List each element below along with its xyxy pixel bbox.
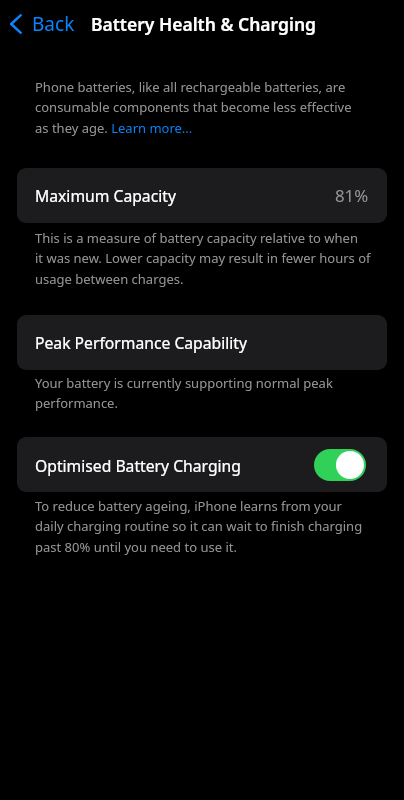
button[interactable]: Maximum Capacity	[17, 168, 387, 223]
button[interactable]: Back	[6, 5, 79, 43]
staticText: Peak Performance Capability	[35, 332, 248, 353]
staticText: Maximum Capacity	[35, 185, 176, 206]
button[interactable]: Optimised Battery Charging	[17, 437, 387, 492]
staticText: 81%	[335, 184, 369, 207]
staticText: This is a measure of battery capacity re…	[35, 229, 372, 288]
staticText: Optimised Battery Charging	[35, 455, 241, 476]
staticText: Your battery is currently supporting nor…	[35, 374, 372, 412]
staticText: Battery Health & Charging	[91, 12, 316, 36]
staticText: To reduce battery ageing, iPhone learns …	[35, 497, 372, 556]
button[interactable]: Peak Performance Capability	[17, 315, 387, 370]
staticText: Phone batteries, like all rechargeable b…	[35, 78, 352, 137]
button[interactable]: Optimised Battery Charging toggle	[314, 449, 366, 481]
staticText: Back	[32, 11, 75, 37]
